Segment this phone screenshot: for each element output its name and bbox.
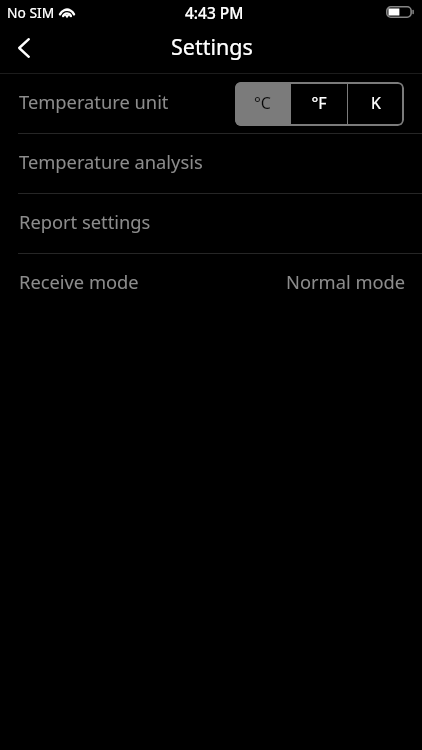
staticText: Report settings (19, 209, 151, 234)
button[interactable]: Temperature analysis (0, 134, 422, 193)
button[interactable]: °F (291, 82, 347, 126)
button[interactable]: Report settings (0, 194, 422, 253)
staticText: °F (311, 92, 327, 114)
button[interactable]: Back (0, 26, 46, 72)
staticText: Normal mode (286, 269, 406, 294)
staticText: Temperature unit (19, 89, 169, 114)
button[interactable]: K (348, 82, 404, 126)
button[interactable]: °C (235, 82, 290, 126)
staticText: No SIM (7, 3, 55, 22)
staticText: Receive mode (19, 269, 139, 294)
staticText: °C (254, 92, 271, 114)
staticText: Temperature analysis (19, 149, 203, 174)
staticText: K (371, 92, 381, 114)
button[interactable]: Receive mode (0, 254, 422, 313)
staticText: Settings (171, 32, 253, 61)
staticText: 4:43 PM (185, 2, 244, 23)
